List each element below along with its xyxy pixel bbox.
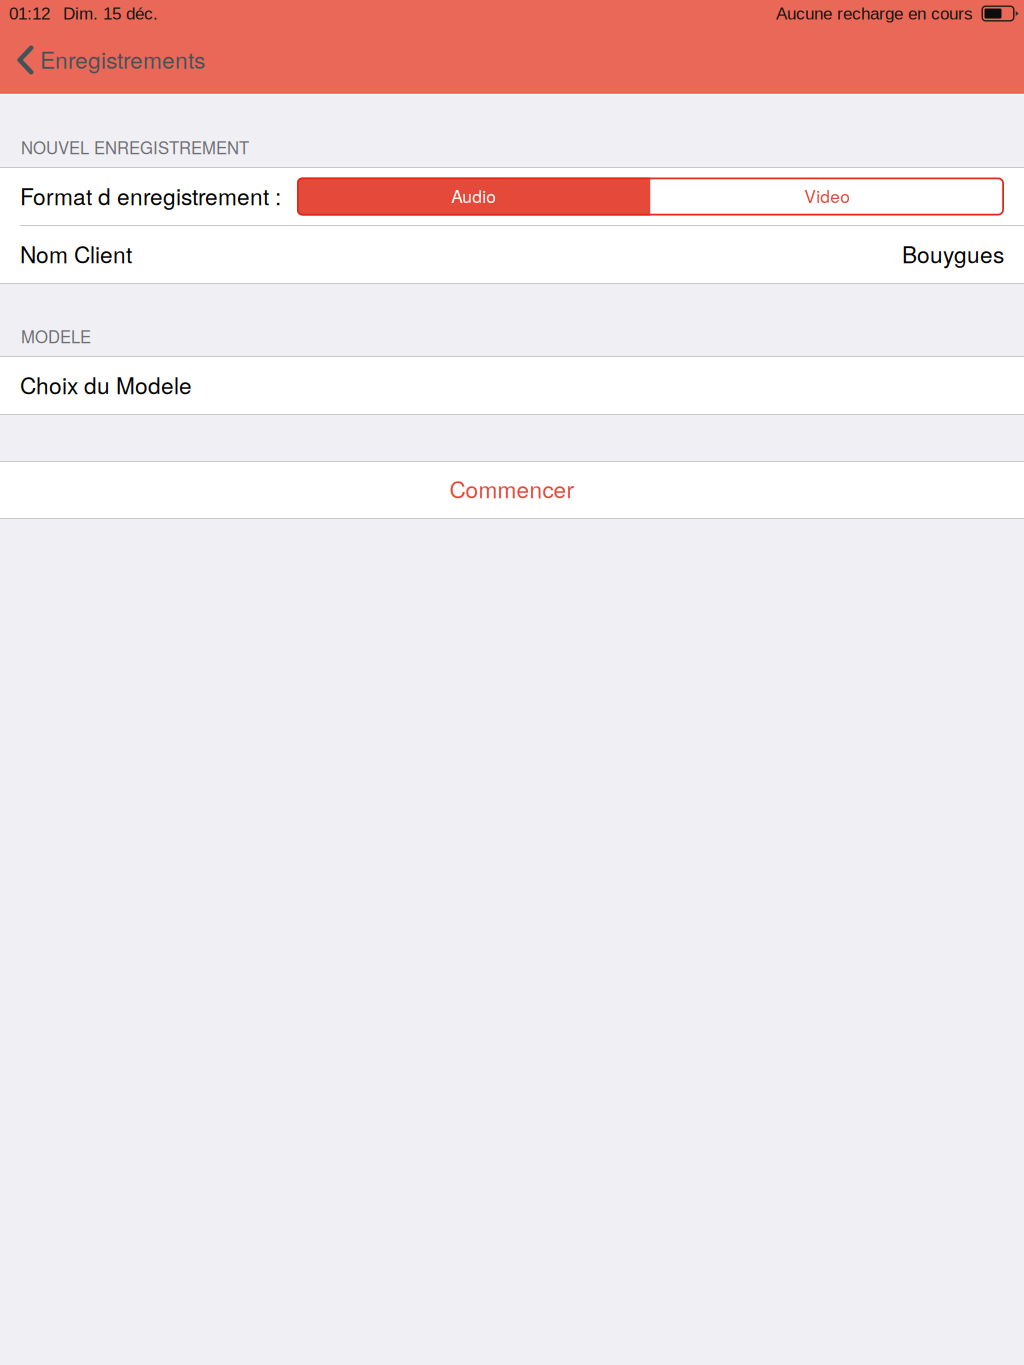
button[interactable]: Video: [650, 177, 1004, 215]
button[interactable]: Choix du Modele: [0, 357, 1024, 414]
staticText: Commencer: [449, 472, 574, 505]
staticText: 01:12: [9, 4, 50, 23]
staticText: Nom Client: [20, 237, 132, 270]
staticText: Aucune recharge en cours: [776, 4, 973, 23]
staticText: Video: [804, 183, 850, 208]
staticText: Enregistrements: [40, 43, 205, 75]
staticText: Bouygues: [902, 237, 1004, 270]
staticText: Audio: [451, 183, 496, 208]
button[interactable]: Commencer: [0, 462, 1024, 518]
staticText: Format d enregistrement :: [20, 179, 281, 212]
staticText: NOUVEL ENREGISTREMENT: [21, 135, 249, 159]
button[interactable]: Retour à Enregistrements: [0, 27, 221, 93]
staticText: Dim. 15 déc.: [63, 4, 158, 23]
staticText: MODELE: [21, 324, 91, 348]
staticText: Choix du Modele: [20, 368, 192, 401]
button[interactable]: Audio: [297, 177, 650, 215]
